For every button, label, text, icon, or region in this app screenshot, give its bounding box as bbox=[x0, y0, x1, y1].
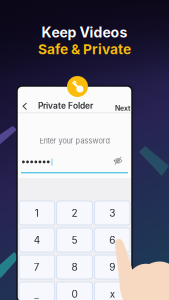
button[interactable]: Show password bbox=[111, 156, 124, 166]
staticText: x bbox=[110, 288, 115, 300]
button[interactable]: 6 bbox=[94, 228, 130, 252]
button[interactable]: 0 bbox=[57, 282, 92, 300]
staticText: 1 bbox=[35, 207, 39, 219]
staticText: 7 bbox=[34, 261, 40, 273]
staticText: 5 bbox=[71, 234, 77, 246]
staticText: Keep Videos bbox=[41, 24, 127, 41]
staticText: Private Folder bbox=[38, 100, 93, 111]
button[interactable]: 1 bbox=[19, 201, 55, 225]
button[interactable]: Back bbox=[19, 98, 30, 114]
button[interactable]: 3 bbox=[94, 201, 130, 225]
staticText: Next bbox=[115, 104, 130, 112]
staticText: 8 bbox=[71, 261, 77, 273]
button[interactable]: Next bbox=[111, 99, 134, 117]
button[interactable]: x bbox=[94, 282, 130, 300]
staticText: _ bbox=[34, 288, 39, 300]
staticText: 0 bbox=[71, 288, 77, 300]
staticText: Safe & Private bbox=[38, 41, 131, 58]
button[interactable]: 9 bbox=[94, 255, 130, 279]
staticText: 6 bbox=[109, 234, 115, 246]
button[interactable]: 2 bbox=[57, 201, 92, 225]
button[interactable]: 4 bbox=[19, 228, 55, 252]
staticText: 4 bbox=[34, 234, 40, 246]
staticText: 2 bbox=[71, 207, 77, 219]
staticText: 9 bbox=[109, 261, 115, 273]
staticText: Enter your password bbox=[39, 136, 109, 145]
button[interactable]: _ bbox=[19, 282, 55, 300]
button[interactable]: 5 bbox=[57, 228, 92, 252]
button[interactable]: 8 bbox=[57, 255, 92, 279]
button[interactable]: 7 bbox=[19, 255, 55, 279]
staticText: 3 bbox=[109, 207, 115, 219]
